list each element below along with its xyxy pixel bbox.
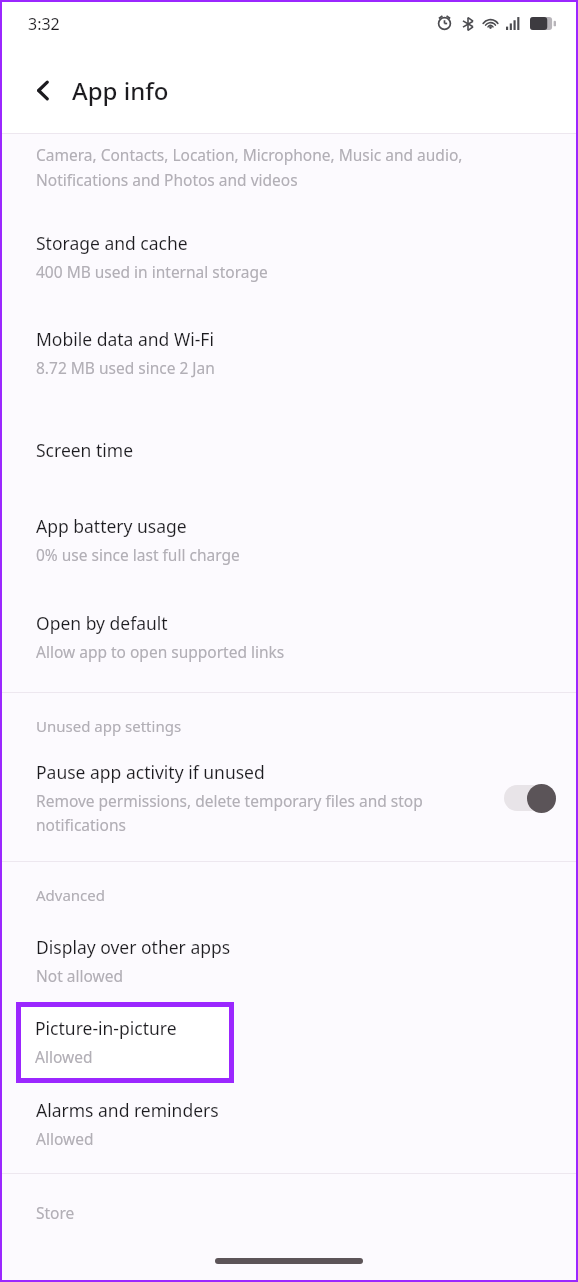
- staticText: Unused app settings: [36, 716, 182, 736]
- button[interactable]: Screen time: [0, 436, 578, 464]
- button[interactable]: Alarms and reminders: [0, 1096, 578, 1151]
- staticText: Store: [36, 1202, 75, 1223]
- staticText: Screen time: [36, 438, 134, 462]
- button[interactable]: Camera, Contacts, Location, Microphone, …: [0, 142, 578, 192]
- button[interactable]: Pause app activity if unused: [0, 760, 578, 835]
- button[interactable]: Mobile data and Wi-Fi: [0, 325, 578, 380]
- staticText: App battery usage: [36, 514, 187, 538]
- staticText: Picture-in-picture: [35, 1016, 177, 1040]
- staticText: 3:32: [28, 13, 60, 35]
- staticText: notifications: [36, 814, 126, 835]
- button[interactable]: App battery usage: [0, 512, 578, 567]
- staticText: Allowed: [35, 1046, 93, 1067]
- staticText: Allowed: [36, 1128, 94, 1149]
- staticText: Not allowed: [36, 965, 124, 986]
- staticText: Display over other apps: [36, 935, 231, 959]
- staticText: 400 MB used in internal storage: [36, 261, 268, 282]
- button[interactable]: Display over other apps: [0, 933, 578, 988]
- button[interactable]: Back: [20, 67, 66, 113]
- button[interactable]: Picture-in-picture: [16, 1002, 234, 1083]
- staticText: Storage and cache: [36, 231, 188, 255]
- staticText: Remove permissions, delete temporary fil…: [36, 790, 423, 811]
- staticText: Open by default: [36, 611, 168, 635]
- staticText: 8.72 MB used since 2 Jan: [36, 357, 215, 378]
- staticText: Pause app activity if unused: [36, 760, 265, 784]
- staticText: Camera, Contacts, Location, Microphone, …: [36, 144, 463, 165]
- staticText: Advanced: [36, 885, 106, 905]
- staticText: Allow app to open supported links: [36, 641, 285, 662]
- staticText: Mobile data and Wi-Fi: [36, 327, 214, 351]
- staticText: Notifications and Photos and videos: [36, 169, 298, 190]
- button[interactable]: Storage and cache: [0, 229, 578, 284]
- staticText: 0% use since last full charge: [36, 544, 240, 565]
- staticText: Alarms and reminders: [36, 1098, 219, 1122]
- staticText: App info: [72, 74, 169, 107]
- button[interactable]: Open by default: [0, 609, 578, 664]
